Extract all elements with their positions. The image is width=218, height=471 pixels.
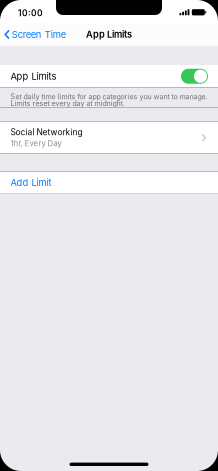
staticText: Social Networking xyxy=(10,127,82,137)
staticText: App Limits xyxy=(86,29,132,40)
button[interactable]: Social Networking xyxy=(0,122,218,154)
staticText: App Limits xyxy=(10,71,56,82)
staticText: Set daily time limits for app categories… xyxy=(10,92,207,108)
button[interactable]: Add Limit xyxy=(0,172,218,194)
staticText: Screen Time xyxy=(12,29,66,40)
button[interactable]: Screen Time xyxy=(0,26,70,43)
staticText: Add Limit xyxy=(10,177,51,188)
staticText: 1hr, Every Day xyxy=(10,139,61,148)
button[interactable]: App Limits xyxy=(0,65,218,87)
staticText: 10:00 xyxy=(18,8,43,18)
